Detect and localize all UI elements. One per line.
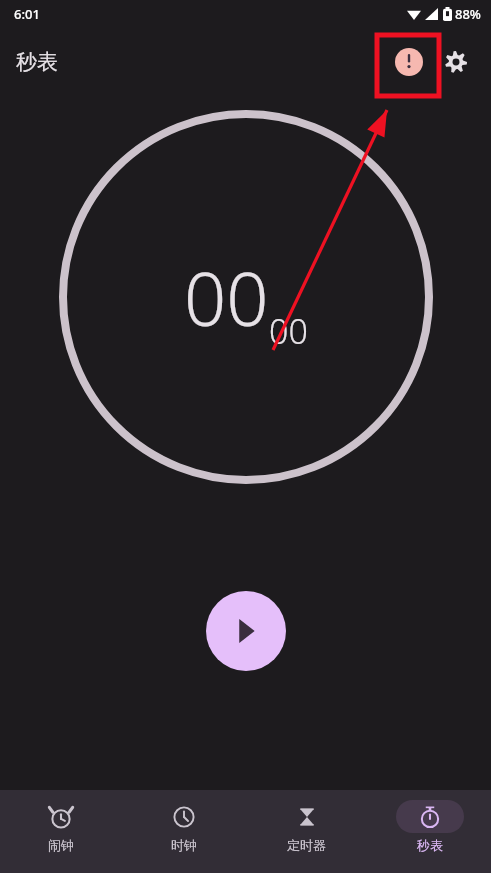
button[interactable]: 秒表 [368, 790, 491, 873]
staticText: 00 [269, 308, 308, 354]
staticText: 定时器 [287, 837, 326, 853]
staticText: 00 [184, 247, 269, 348]
staticText: 6:01 [14, 5, 40, 23]
button[interactable]: 时钟 [122, 790, 245, 873]
button[interactable]: 闹钟 [0, 790, 122, 873]
staticText: 秒表 [417, 837, 443, 853]
staticText: 88% [455, 5, 481, 23]
button[interactable]: Settings [433, 39, 479, 85]
button[interactable]: Notification alert [385, 38, 433, 86]
staticText: 秒表 [16, 49, 58, 75]
staticText: 时钟 [171, 837, 197, 853]
button[interactable]: 定时器 [245, 790, 368, 873]
staticText: 闹钟 [48, 837, 74, 853]
button[interactable]: Start [206, 591, 286, 671]
